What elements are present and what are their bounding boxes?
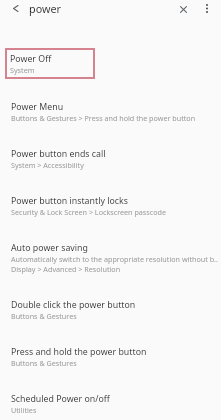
staticText: Power button ends call (11, 148, 106, 160)
staticText: Security & Lock Screen > Lockscreen pass… (11, 207, 167, 217)
button[interactable]: Power button ends call (0, 136, 221, 183)
button[interactable]: Double click the power button (0, 287, 221, 334)
button[interactable]: Power Off (5, 48, 95, 79)
staticText: Display > Advanced > Resolution (11, 264, 121, 274)
staticText: Double click the power button (11, 299, 136, 311)
button[interactable]: Clear search (171, 0, 195, 18)
button[interactable]: Back (3, 0, 27, 17)
staticText: Power button instantly locks (11, 195, 128, 207)
staticText: Press and hold the power button (11, 346, 147, 358)
staticText: Power Menu (11, 101, 64, 113)
button[interactable]: Scheduled Power on/off (0, 381, 221, 420)
button[interactable]: Press and hold the power button (0, 334, 221, 381)
staticText: Scheduled Power on/off (11, 393, 110, 405)
staticText: power (29, 1, 61, 16)
staticText: Buttons & Gestures (11, 311, 77, 321)
staticText: Utilities (11, 405, 37, 415)
staticText: System > Accessibility (11, 160, 84, 170)
staticText: Automatically switch to the appropriate … (11, 254, 218, 264)
button[interactable]: Power button instantly locks (0, 183, 221, 230)
staticText: Buttons & Gestures (11, 358, 77, 368)
button[interactable]: Power Menu (0, 89, 221, 136)
button[interactable]: Auto power saving (0, 230, 221, 287)
staticText: System (10, 65, 35, 75)
staticText: Power Off (10, 53, 52, 65)
staticText: Buttons & Gestures > Press and hold the … (11, 113, 196, 123)
button[interactable]: More options (195, 0, 218, 17)
staticText: Auto power saving (11, 242, 88, 254)
